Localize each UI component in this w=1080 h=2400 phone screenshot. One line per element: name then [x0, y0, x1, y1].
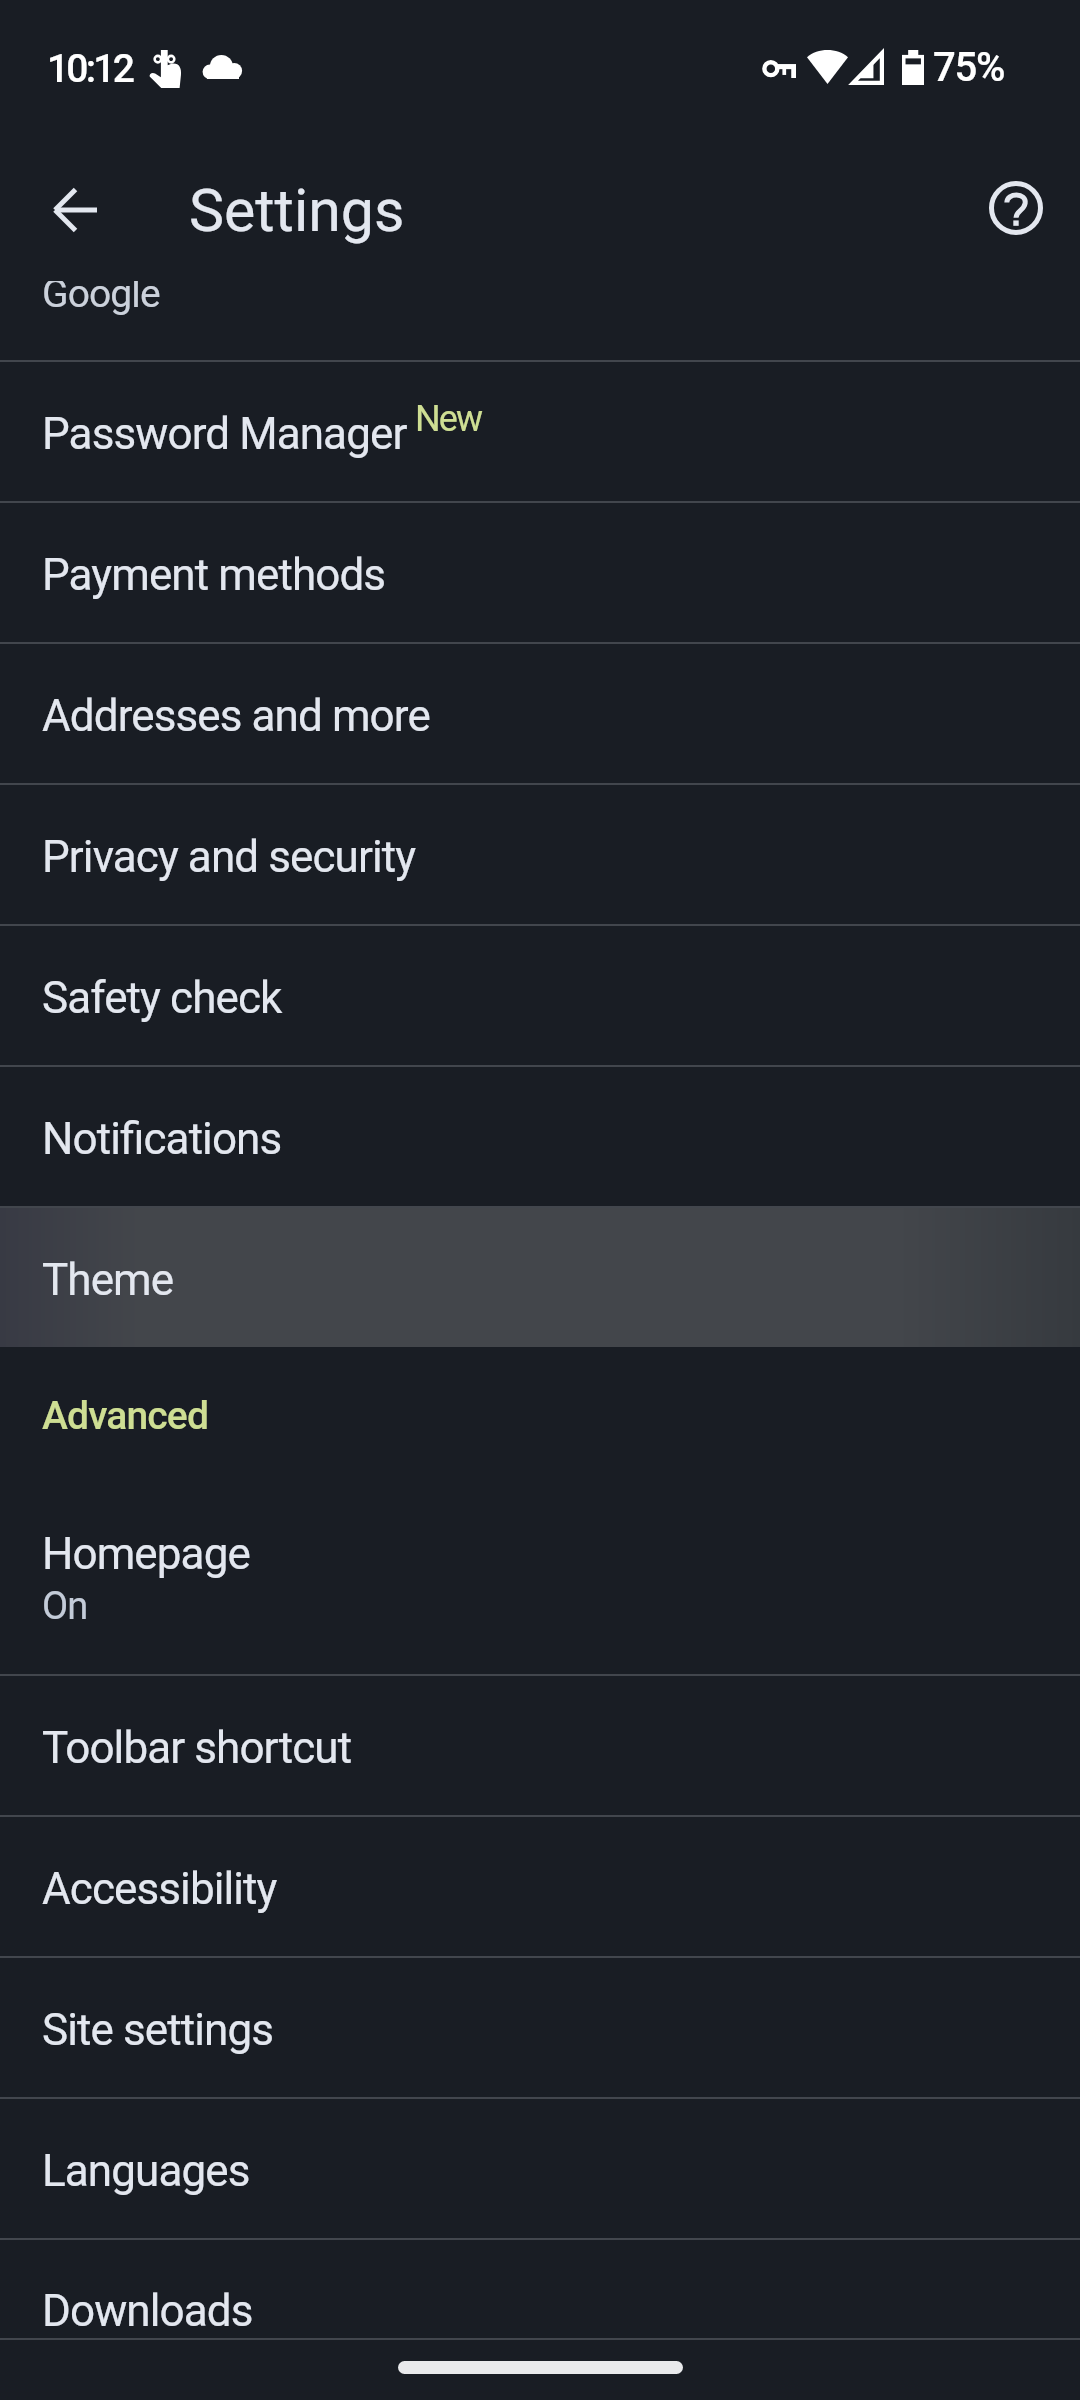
staticText: 75% — [933, 44, 1005, 91]
staticText: Homepage — [42, 1528, 250, 1580]
staticText: Settings — [189, 176, 405, 245]
staticText: Toolbar shortcut — [42, 1722, 352, 1774]
button[interactable]: Password Manager — [0, 362, 1080, 501]
button[interactable]: Safety check — [0, 926, 1080, 1065]
staticText: Notifications — [42, 1113, 282, 1165]
staticText: Accessibility — [42, 1863, 277, 1915]
staticText: Google — [42, 281, 160, 317]
staticText: Password Manager — [42, 408, 407, 460]
button[interactable]: Toolbar shortcut — [0, 1676, 1080, 1815]
staticText: New — [415, 398, 482, 440]
button[interactable]: Payment methods — [0, 503, 1080, 642]
staticText: On — [42, 1584, 88, 1629]
button[interactable]: Addresses and more — [0, 644, 1080, 783]
button[interactable]: Languages — [0, 2099, 1080, 2238]
staticText: Languages — [42, 2145, 250, 2197]
button[interactable]: Notifications — [0, 1067, 1080, 1206]
staticText: Safety check — [42, 972, 282, 1024]
staticText: Theme — [42, 1254, 174, 1306]
button[interactable]: Back — [32, 168, 120, 256]
staticText: Payment methods — [42, 549, 386, 601]
staticText: 10:12 — [47, 46, 133, 92]
staticText: Site settings — [42, 2004, 274, 2056]
staticText: Privacy and security — [42, 831, 416, 883]
button[interactable]: Accessibility — [0, 1817, 1080, 1956]
button[interactable]: Help — [972, 164, 1060, 252]
button[interactable]: Site settings — [0, 1958, 1080, 2097]
button[interactable]: Theme — [0, 1208, 1080, 1347]
button[interactable]: Privacy and security — [0, 785, 1080, 924]
staticText: Addresses and more — [42, 690, 430, 742]
button[interactable]: Homepage — [0, 1459, 1080, 1674]
staticText: Advanced — [42, 1393, 209, 1439]
staticText: Downloads — [42, 2285, 253, 2337]
